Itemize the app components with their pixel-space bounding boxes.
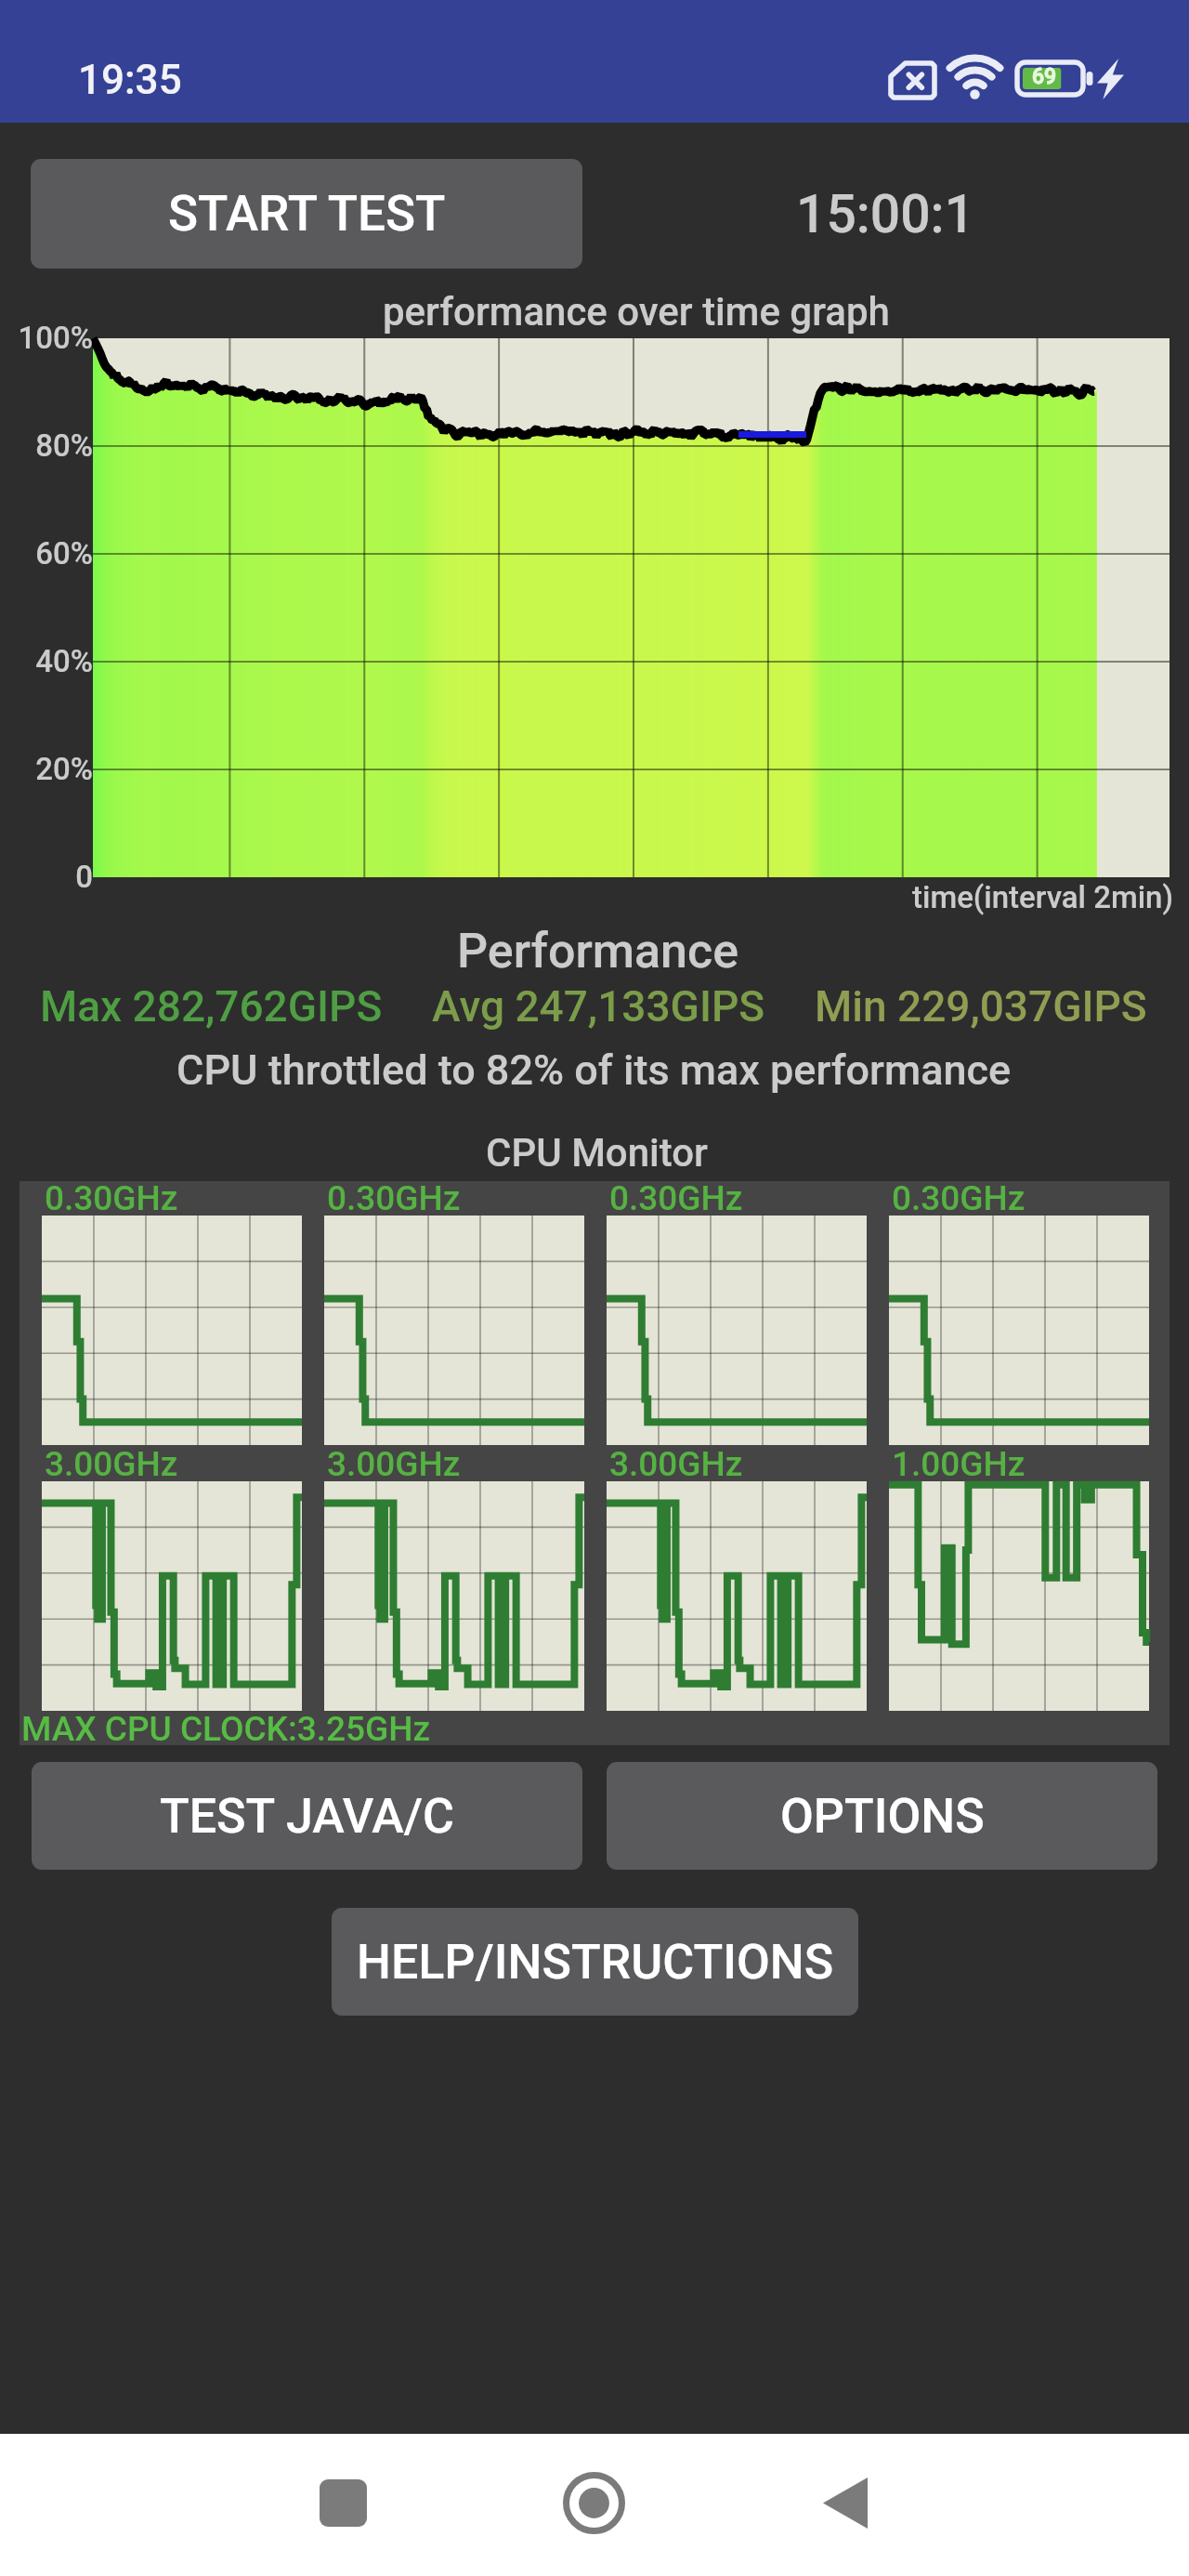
staticText: CPU throttled to 82% of its max performa… <box>176 1045 1012 1095</box>
staticText: 3.00GHz <box>609 1444 743 1484</box>
staticText: time(interval 2min) <box>912 879 1173 915</box>
staticText: 100% <box>0 320 93 2576</box>
staticText: 80% <box>0 427 93 2576</box>
staticText: 20% <box>0 751 93 2576</box>
staticText: HELP/INSTRUCTIONS <box>357 1934 834 1991</box>
staticText: 0.30GHz <box>892 1178 1026 1218</box>
staticText: CPU Monitor <box>486 1130 708 1176</box>
staticText: 0 <box>0 859 93 2576</box>
staticText: 60% <box>0 535 93 2576</box>
staticText: START TEST <box>168 185 446 243</box>
staticText: 1.00GHz <box>892 1444 1026 1484</box>
button[interactable]: OPTIONS <box>607 1762 1157 1870</box>
staticText: Min 229,037GIPS <box>815 981 1147 1032</box>
button[interactable]: HELP/INSTRUCTIONS <box>332 1908 858 2016</box>
staticText: Max 282,762GIPS <box>40 981 383 1032</box>
staticText: 0.30GHz <box>327 1178 461 1218</box>
staticText: Performance <box>457 923 739 979</box>
staticText: 19:35 <box>78 56 182 104</box>
staticText: 40% <box>0 643 93 2576</box>
staticText: performance over time graph <box>383 289 890 335</box>
staticText: 3.00GHz <box>327 1444 461 1484</box>
staticText: 0.30GHz <box>45 1178 178 1218</box>
button[interactable]: Home <box>539 2448 648 2557</box>
button[interactable]: START TEST <box>31 159 582 269</box>
staticText: Avg 247,133GIPS <box>432 981 765 1032</box>
staticText: OPTIONS <box>780 1788 985 1845</box>
staticText: 3.00GHz <box>45 1444 178 1484</box>
button[interactable]: Back <box>790 2448 900 2557</box>
staticText: MAX CPU CLOCK:3.25GHz <box>21 1709 431 1749</box>
button[interactable]: TEST JAVA/C <box>32 1762 582 1870</box>
button[interactable]: Recent apps <box>288 2448 398 2557</box>
staticText: 15:00:1 <box>796 183 975 245</box>
staticText: 69 <box>1032 64 1057 89</box>
staticText: 0.30GHz <box>609 1178 743 1218</box>
staticText: TEST JAVA/C <box>160 1788 455 1845</box>
